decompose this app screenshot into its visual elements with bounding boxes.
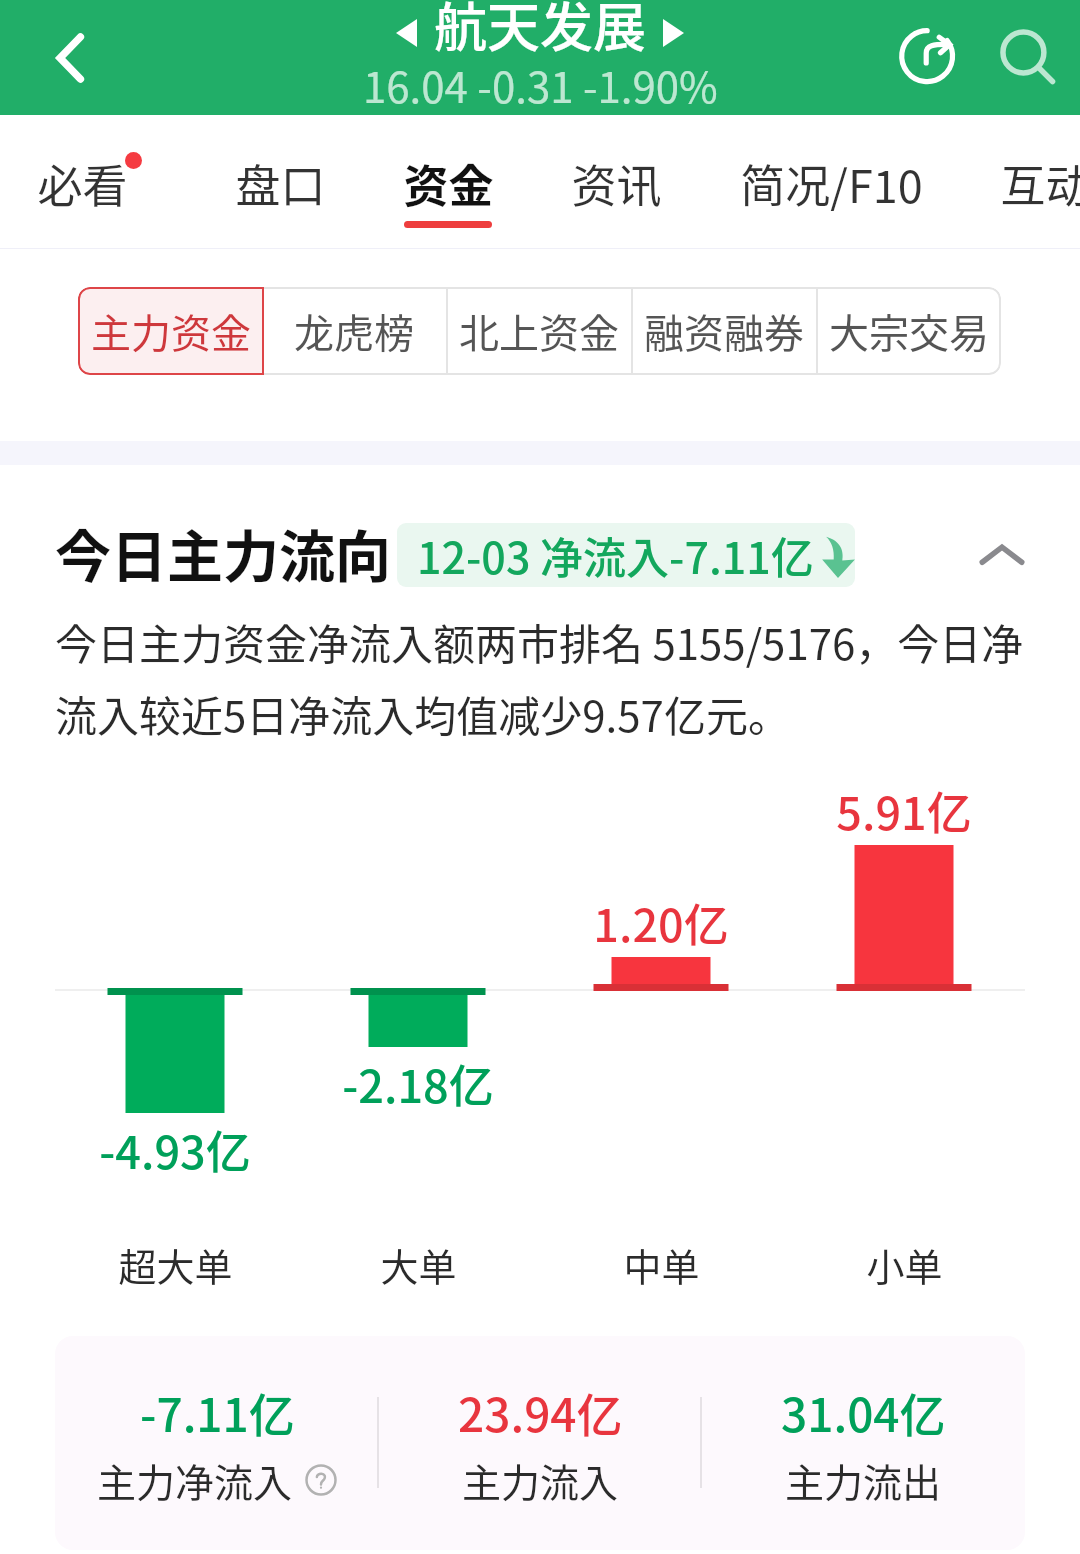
staticText: 31.04亿	[781, 1379, 946, 1446]
staticText: -4.93亿	[99, 1117, 251, 1182]
staticText: 中单	[623, 1237, 700, 1292]
staticText: 互动	[1000, 151, 1080, 216]
staticText: 盘口	[235, 151, 326, 216]
staticText: 北上资金	[459, 302, 619, 360]
button[interactable]: 必看	[0, 115, 212, 248]
button[interactable]: 23.94亿	[379, 1336, 702, 1550]
button[interactable]: 资金	[318, 115, 578, 248]
staticText: 大宗交易	[829, 302, 989, 360]
button[interactable]: Collapse	[962, 516, 1042, 596]
button[interactable]: Share	[880, 9, 977, 106]
button[interactable]: 大宗交易	[816, 287, 1001, 375]
staticText: 小单	[866, 1237, 943, 1292]
button[interactable]: 互动	[915, 115, 1080, 248]
staticText: 主力流入	[462, 1452, 619, 1508]
staticText: 23.94亿	[458, 1379, 623, 1446]
staticText: 主力资金	[91, 302, 251, 360]
staticText: 1.20亿	[593, 890, 729, 955]
button[interactable]: 盘口	[150, 115, 410, 248]
staticText: 简况/F10	[740, 151, 923, 216]
button[interactable]: Back	[22, 0, 122, 115]
staticText: 主力资金	[90, 302, 250, 360]
staticText: 资讯	[571, 151, 662, 216]
button[interactable]: 12-03 净流入-7.11亿	[397, 523, 855, 587]
staticText: 超大单	[118, 1237, 233, 1292]
staticText: 主力流出	[785, 1452, 942, 1508]
staticText: 航天发展	[434, 0, 646, 63]
button[interactable]: 北上资金	[446, 287, 631, 375]
staticText: 5.91亿	[836, 778, 972, 843]
staticText: 必看	[37, 151, 128, 216]
button[interactable]: Search	[977, 6, 1080, 109]
staticText: 12-03 净流入-7.11亿	[417, 524, 814, 586]
staticText: 龙虎榜	[294, 302, 414, 360]
staticText: -2.18亿	[342, 1051, 494, 1116]
button[interactable]: 主力资金	[78, 287, 262, 375]
button[interactable]: 龙虎榜	[262, 287, 446, 375]
staticText: 今日主力资金净流入额两市排名 5155/5176，今日净流入较近5日净流入均值减…	[55, 611, 1040, 744]
staticText: 融资融券	[644, 302, 804, 360]
staticText: 今日主力流向	[55, 512, 391, 593]
staticText: 主力净流入	[97, 1452, 293, 1508]
staticText: 资金	[403, 151, 494, 216]
button[interactable]: -7.11亿	[55, 1336, 379, 1550]
staticText: -7.11亿	[140, 1379, 295, 1446]
staticText: 大单	[380, 1237, 457, 1292]
button[interactable]: 融资融券	[631, 287, 816, 375]
button[interactable]: 资讯	[486, 115, 746, 248]
button[interactable]: 主力资金	[78, 287, 264, 375]
button[interactable]: 简况/F10	[701, 115, 961, 248]
button[interactable]: 31.04亿	[702, 1336, 1025, 1550]
staticText: 16.04 -0.31 -1.90%	[363, 54, 718, 115]
